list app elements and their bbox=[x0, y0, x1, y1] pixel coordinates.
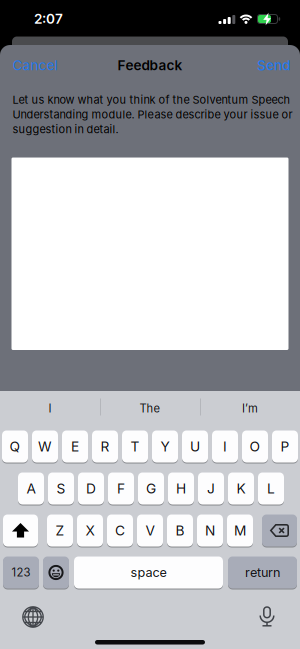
staticText: E bbox=[71, 438, 79, 455]
staticText: P bbox=[280, 438, 289, 455]
button[interactable]: X bbox=[77, 514, 103, 546]
button[interactable]: J bbox=[198, 472, 224, 504]
button[interactable]: K bbox=[228, 472, 254, 504]
button[interactable]: A bbox=[18, 472, 44, 504]
staticText: V bbox=[145, 522, 154, 539]
staticText: U bbox=[190, 438, 200, 455]
staticText: D bbox=[86, 480, 96, 497]
button[interactable]: The bbox=[101, 394, 199, 422]
button[interactable]: F bbox=[108, 472, 134, 504]
button[interactable]: Z bbox=[47, 514, 73, 546]
staticText: X bbox=[85, 522, 94, 539]
button[interactable]: I bbox=[212, 430, 238, 462]
button[interactable]: W bbox=[32, 430, 58, 462]
button[interactable]: T bbox=[122, 430, 148, 462]
button[interactable]: Send bbox=[257, 57, 290, 73]
staticText: L bbox=[267, 480, 275, 497]
button[interactable]: G bbox=[138, 472, 164, 504]
staticText: R bbox=[100, 438, 109, 455]
button[interactable]: space bbox=[74, 556, 223, 588]
button[interactable]: Emoji bbox=[43, 556, 69, 588]
button[interactable]: H bbox=[168, 472, 194, 504]
staticText: suggestion in detail. bbox=[12, 123, 118, 136]
button[interactable]: return bbox=[228, 556, 297, 588]
staticText: N bbox=[205, 522, 215, 539]
staticText: Understanding module. Please describe yo… bbox=[12, 108, 292, 121]
button[interactable]: Next keyboard bbox=[18, 602, 48, 632]
button[interactable]: C bbox=[107, 514, 133, 546]
staticText: H bbox=[176, 480, 186, 497]
staticText: Cancel bbox=[12, 57, 57, 73]
button[interactable]: Cancel bbox=[12, 57, 57, 73]
button[interactable]: I bbox=[1, 394, 99, 422]
staticText: F bbox=[117, 480, 125, 497]
button[interactable]: I’m bbox=[201, 394, 299, 422]
button[interactable]: M bbox=[227, 514, 253, 546]
button[interactable]: N bbox=[197, 514, 223, 546]
staticText: S bbox=[56, 480, 65, 497]
button[interactable]: 123 bbox=[3, 556, 39, 588]
staticText: space bbox=[130, 565, 166, 580]
staticText: O bbox=[249, 438, 260, 455]
staticText: T bbox=[130, 438, 139, 455]
button[interactable]: V bbox=[137, 514, 163, 546]
staticText: M bbox=[234, 522, 246, 539]
button[interactable]: Q bbox=[2, 430, 28, 462]
staticText: I bbox=[48, 402, 51, 415]
staticText: I’m bbox=[242, 402, 258, 415]
staticText: Q bbox=[9, 438, 20, 455]
button[interactable]: L bbox=[258, 472, 284, 504]
button[interactable]: B bbox=[167, 514, 193, 546]
button[interactable]: Shift bbox=[3, 514, 38, 546]
staticText: I bbox=[223, 438, 227, 455]
button[interactable]: R bbox=[92, 430, 118, 462]
button[interactable]: Delete bbox=[262, 514, 297, 546]
staticText: C bbox=[115, 522, 125, 539]
staticText: Z bbox=[55, 522, 64, 539]
staticText: Send bbox=[257, 57, 290, 73]
button[interactable]: Dictation bbox=[255, 601, 279, 631]
staticText: J bbox=[207, 480, 215, 497]
button[interactable]: S bbox=[48, 472, 74, 504]
staticText: return bbox=[245, 565, 280, 580]
staticText: W bbox=[38, 438, 52, 455]
staticText: Let us know what you think of the Solven… bbox=[12, 93, 290, 106]
staticText: A bbox=[26, 480, 35, 497]
staticText: G bbox=[146, 480, 156, 497]
button[interactable]: E bbox=[62, 430, 88, 462]
staticText: B bbox=[175, 522, 184, 539]
staticText: The bbox=[139, 402, 160, 415]
staticText: 123 bbox=[11, 566, 30, 579]
staticText: Y bbox=[160, 438, 169, 455]
staticText: K bbox=[236, 480, 245, 497]
staticText: Feedback bbox=[117, 57, 182, 73]
button[interactable]: P bbox=[272, 430, 298, 462]
staticText: 2:07 bbox=[34, 10, 63, 27]
button[interactable]: U bbox=[182, 430, 208, 462]
button[interactable]: O bbox=[242, 430, 268, 462]
button[interactable]: D bbox=[78, 472, 104, 504]
button[interactable]: Y bbox=[152, 430, 178, 462]
